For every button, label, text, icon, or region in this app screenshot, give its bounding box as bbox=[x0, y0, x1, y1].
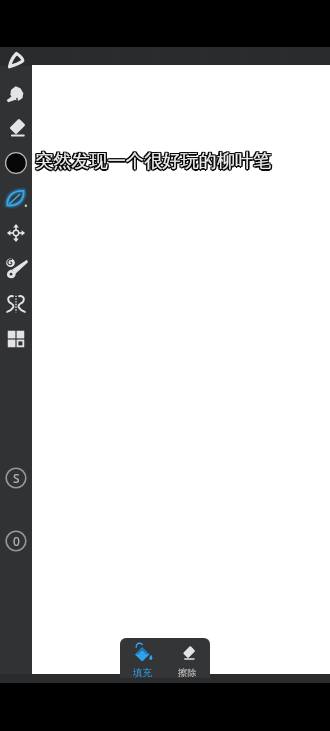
button[interactable]: Colour bbox=[3, 150, 29, 176]
button[interactable]: Eraser bbox=[3, 116, 29, 142]
button[interactable]: Brush bbox=[3, 256, 29, 282]
staticText: S bbox=[13, 470, 20, 486]
button[interactable]: Stabiliser bbox=[5, 467, 27, 489]
staticText: 0 bbox=[13, 533, 20, 549]
button[interactable]: Willow leaf pen bbox=[3, 186, 29, 212]
button[interactable]: 填充 bbox=[120, 638, 165, 678]
button[interactable]: Opacity bbox=[5, 530, 27, 552]
staticText: 填充 bbox=[133, 667, 152, 678]
button[interactable]: Smudge bbox=[3, 81, 29, 107]
button[interactable]: Lasso select bbox=[3, 47, 29, 73]
button[interactable]: 擦除 bbox=[165, 638, 210, 678]
button[interactable]: Symmetry bbox=[3, 291, 29, 317]
button[interactable]: Layers bbox=[3, 326, 29, 352]
staticText: 擦除 bbox=[178, 667, 197, 678]
button[interactable]: Move bbox=[3, 220, 29, 246]
